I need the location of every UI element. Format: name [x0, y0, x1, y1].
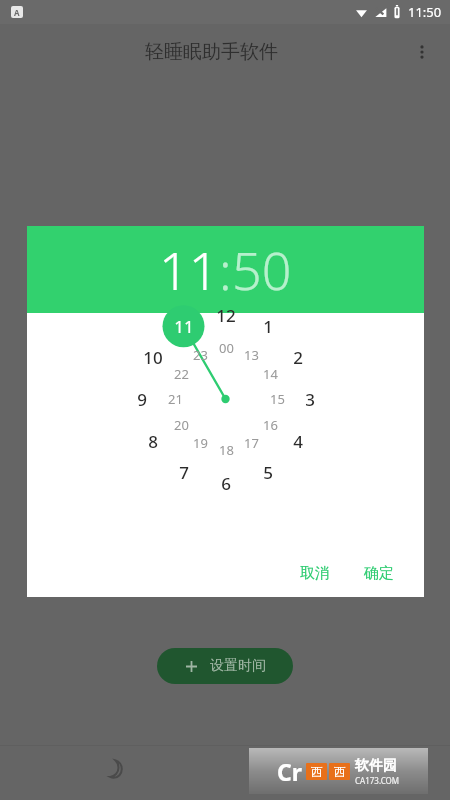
button[interactable]: 醒来在 — [225, 746, 450, 800]
button[interactable]: 11 — [168, 310, 200, 342]
button[interactable]: 6 — [210, 467, 242, 499]
staticText: 10 — [143, 346, 163, 369]
staticText: 2 — [293, 346, 303, 369]
button[interactable]: 1 — [252, 310, 284, 342]
button[interactable]: 22 — [165, 358, 197, 390]
staticText: 9 — [137, 388, 147, 411]
staticText: 7 — [179, 461, 189, 484]
staticText: 14 — [263, 365, 278, 383]
staticText: 醒来在 — [320, 778, 356, 793]
button[interactable]: 18 — [210, 434, 242, 466]
staticText: 00 — [219, 339, 234, 357]
staticText: 11 — [174, 315, 194, 338]
staticText: 17 — [244, 434, 259, 452]
button[interactable]: 21 — [159, 383, 191, 415]
staticText: Cr — [277, 756, 303, 787]
staticText: 21 — [168, 390, 183, 408]
staticText: 取消 — [300, 564, 330, 583]
staticText: 11:50 — [408, 3, 442, 21]
button[interactable]: 20 — [165, 409, 197, 441]
button[interactable]: 确定 — [356, 558, 402, 589]
staticText: 23 — [193, 346, 208, 364]
staticText: 4 — [293, 430, 303, 453]
button[interactable]: 23 — [184, 339, 216, 371]
button[interactable]: 50 — [232, 234, 292, 305]
staticText: CA173.COM — [355, 775, 400, 786]
button[interactable]: 19 — [184, 427, 216, 459]
button[interactable]: 取消 — [292, 558, 338, 589]
button[interactable]: More options — [402, 32, 442, 72]
staticText: 5 — [263, 461, 273, 484]
staticText: 3 — [305, 388, 315, 411]
staticText: 设置时间 — [210, 657, 266, 675]
staticText: 8 — [148, 430, 158, 453]
staticText: 19 — [193, 434, 208, 452]
staticText: 12 — [216, 304, 236, 327]
staticText: : — [219, 234, 232, 305]
button[interactable]: 14 — [254, 358, 286, 390]
button[interactable]: 5 — [252, 456, 284, 488]
button[interactable]: 设置时间 — [157, 648, 293, 684]
staticText: 13 — [244, 346, 259, 364]
staticText: 15 — [270, 390, 285, 408]
button[interactable]: 11 — [159, 234, 219, 305]
button[interactable]: 4 — [282, 425, 314, 457]
button[interactable]: 16 — [254, 409, 286, 441]
staticText: 6 — [221, 472, 231, 495]
button[interactable]: 9 — [126, 383, 158, 415]
button[interactable]: 2 — [282, 341, 314, 373]
button[interactable]: 17 — [235, 427, 267, 459]
staticText: 西 — [311, 764, 323, 779]
button[interactable]: 7 — [168, 456, 200, 488]
button[interactable]: 00 — [210, 332, 242, 364]
button[interactable]: 10 — [137, 341, 169, 373]
button[interactable]: 13 — [235, 339, 267, 371]
staticText: 软件园 — [355, 757, 397, 775]
staticText: 西 — [334, 764, 346, 779]
staticText: 轻睡眠助手软件 — [145, 40, 278, 64]
staticText: 22 — [174, 365, 189, 383]
staticText: 16 — [263, 416, 278, 434]
button[interactable]: 15 — [261, 383, 293, 415]
staticText: 1 — [263, 315, 273, 338]
button[interactable]: 8 — [137, 425, 169, 457]
staticText: A — [14, 7, 20, 18]
button[interactable]: 12 — [210, 299, 242, 331]
staticText: 确定 — [364, 564, 394, 583]
staticText: 18 — [219, 441, 234, 459]
button[interactable]: 3 — [294, 383, 326, 415]
staticText: 20 — [174, 416, 189, 434]
